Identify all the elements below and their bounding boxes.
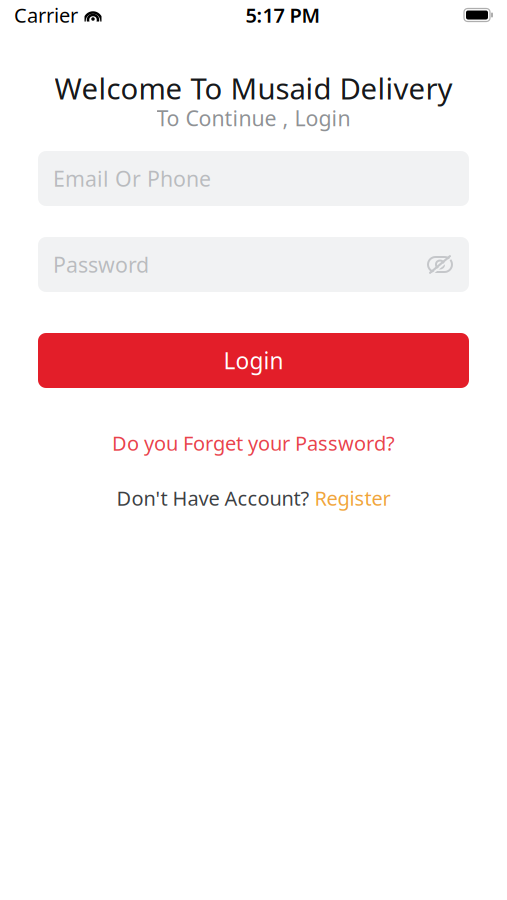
button[interactable]: Password bbox=[38, 237, 469, 292]
button[interactable]: Email Or Phone bbox=[38, 151, 469, 206]
staticText: Login bbox=[223, 345, 283, 375]
staticText: Register bbox=[314, 485, 390, 511]
button[interactable]: Do you Forget your Password? bbox=[112, 432, 395, 454]
staticText: Password bbox=[53, 250, 149, 279]
staticText: Carrier bbox=[14, 2, 78, 28]
staticText: Don't Have Account? bbox=[116, 485, 309, 511]
staticText: 5:17 PM bbox=[245, 2, 320, 28]
staticText: Do you Forget your Password? bbox=[112, 430, 395, 456]
staticText: Email Or Phone bbox=[53, 164, 211, 193]
staticText: Welcome To Musaid Delivery bbox=[54, 68, 452, 107]
staticText: To Continue , Login bbox=[156, 104, 350, 132]
button[interactable]: Register bbox=[314, 485, 390, 511]
button[interactable]: Login bbox=[38, 333, 469, 388]
